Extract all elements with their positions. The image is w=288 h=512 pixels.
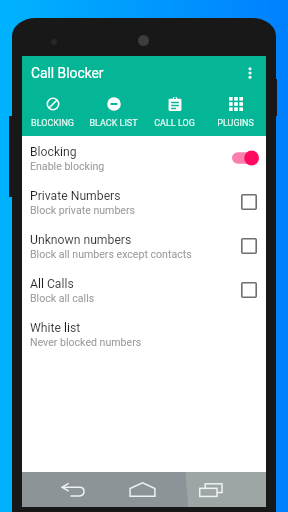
button[interactable]: Checkbox: [241, 194, 257, 210]
button[interactable]: Unknown numbers: [22, 224, 266, 268]
staticText: All Calls: [30, 277, 74, 291]
button[interactable]: Back: [22, 472, 103, 507]
button[interactable]: White list: [22, 312, 266, 356]
staticText: BLOCKING: [31, 118, 74, 129]
button[interactable]: Checkbox: [241, 282, 257, 298]
staticText: Block all numbers except contacts: [30, 248, 192, 260]
staticText: Block all calls: [30, 292, 95, 304]
staticText: Enable blocking: [30, 160, 105, 172]
staticText: White list: [30, 321, 81, 335]
staticText: Unknown numbers: [30, 233, 132, 247]
button[interactable]: Blocking: [22, 136, 266, 180]
button[interactable]: BLOCKING: [22, 89, 83, 136]
button[interactable]: Home: [103, 472, 184, 507]
button[interactable]: CALL LOG: [144, 89, 205, 136]
button[interactable]: Private Numbers: [22, 180, 266, 224]
button[interactable]: Enable blocking toggle: [232, 150, 259, 166]
button[interactable]: BLACK LIST: [83, 89, 144, 136]
staticText: Call Blocker: [31, 65, 104, 81]
staticText: BLACK LIST: [89, 118, 138, 129]
button[interactable]: All Calls: [22, 268, 266, 312]
staticText: CALL LOG: [154, 118, 195, 129]
staticText: Blocking: [30, 145, 77, 159]
button[interactable]: Recents: [184, 472, 266, 507]
button[interactable]: More options: [238, 61, 262, 85]
staticText: Block private numbers: [30, 204, 136, 216]
button[interactable]: PLUGINS: [205, 89, 266, 136]
staticText: Private Numbers: [30, 189, 121, 203]
staticText: Never blocked numbers: [30, 336, 142, 348]
staticText: PLUGINS: [217, 118, 254, 129]
button[interactable]: Checkbox: [241, 238, 257, 254]
